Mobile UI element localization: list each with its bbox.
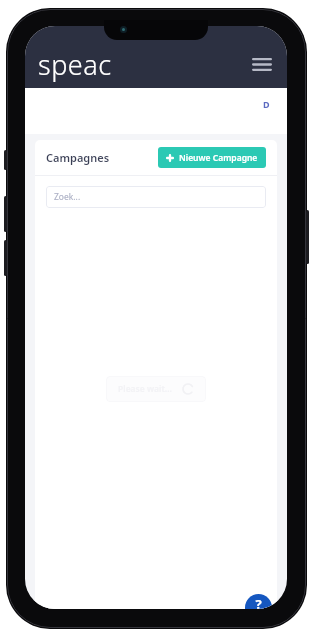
button[interactable]: Nieuwe Campagne <box>158 147 266 168</box>
button[interactable]: Menu <box>245 47 279 81</box>
button[interactable]: Help <box>245 594 272 609</box>
staticText: Zoek... <box>54 191 81 203</box>
staticText: D <box>263 98 270 110</box>
staticText: Please wait... <box>118 383 172 395</box>
staticText: ? <box>255 595 262 609</box>
staticText: Nieuwe Campagne <box>179 152 258 164</box>
button[interactable]: Account <box>259 96 274 111</box>
staticText: Campagnes <box>46 150 110 165</box>
button[interactable]: Zoek... <box>46 186 266 208</box>
button[interactable]: speac <box>38 46 112 83</box>
